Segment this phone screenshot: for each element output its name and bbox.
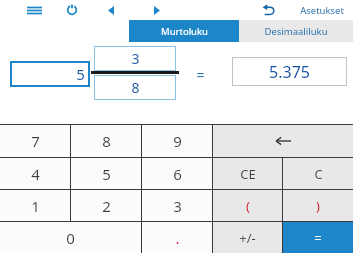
staticText: +/- xyxy=(239,229,256,247)
staticText: ) xyxy=(316,197,320,215)
button[interactable]: ) xyxy=(283,190,353,221)
button[interactable]: Backspace xyxy=(213,125,353,157)
button[interactable]: Refresh xyxy=(61,0,83,20)
staticText: 7 xyxy=(31,131,40,151)
button[interactable]: 3 xyxy=(142,190,212,221)
staticText: . xyxy=(175,228,180,248)
button[interactable]: C xyxy=(283,158,353,189)
staticText: 1 xyxy=(31,196,40,216)
button[interactable]: Next xyxy=(147,0,167,20)
staticText: 3 xyxy=(173,196,182,216)
button[interactable]: Undo xyxy=(257,0,281,20)
button[interactable]: . xyxy=(142,222,212,253)
staticText: 5.375 xyxy=(269,61,310,83)
staticText: ( xyxy=(246,197,250,215)
staticText: 4 xyxy=(31,164,40,184)
button[interactable]: Desimaaliluku xyxy=(239,20,353,42)
button[interactable]: 1 xyxy=(0,190,70,221)
button[interactable]: 6 xyxy=(142,158,212,189)
button[interactable]: 5.375 xyxy=(232,57,347,86)
staticText: 5 xyxy=(102,164,111,184)
button[interactable]: 8 xyxy=(94,75,176,100)
button[interactable]: Previous xyxy=(101,0,121,20)
staticText: 8 xyxy=(102,131,111,151)
button[interactable]: 0 xyxy=(0,222,141,253)
staticText: CE xyxy=(240,165,256,183)
staticText: 3 xyxy=(131,49,140,68)
button[interactable]: 7 xyxy=(0,125,70,157)
staticText: 8 xyxy=(131,78,140,97)
staticText: Desimaaliluku xyxy=(264,25,328,38)
staticText: 5 xyxy=(76,64,85,84)
staticText: 6 xyxy=(173,164,182,184)
button[interactable]: ( xyxy=(213,190,282,221)
button[interactable]: = xyxy=(283,222,353,253)
button[interactable]: 9 xyxy=(142,125,212,157)
staticText: C xyxy=(314,165,323,183)
staticText: = xyxy=(196,65,205,84)
button[interactable]: 5 xyxy=(10,61,90,87)
button[interactable]: Asetukset xyxy=(291,0,353,20)
button[interactable]: 2 xyxy=(71,190,141,221)
button[interactable]: Murtoluku xyxy=(129,20,239,42)
button[interactable]: 8 xyxy=(71,125,141,157)
button[interactable]: 4 xyxy=(0,158,70,189)
staticText: 9 xyxy=(173,131,182,151)
staticText: = xyxy=(314,229,322,247)
staticText: 0 xyxy=(66,228,75,248)
button[interactable]: 3 xyxy=(94,46,176,71)
button[interactable]: 5 xyxy=(71,158,141,189)
button[interactable]: Menu xyxy=(23,0,45,20)
staticText: Asetukset xyxy=(300,4,344,17)
staticText: Murtoluku xyxy=(161,25,208,38)
button[interactable]: +/- xyxy=(213,222,282,253)
button[interactable]: CE xyxy=(213,158,282,189)
staticText: 2 xyxy=(102,196,111,216)
